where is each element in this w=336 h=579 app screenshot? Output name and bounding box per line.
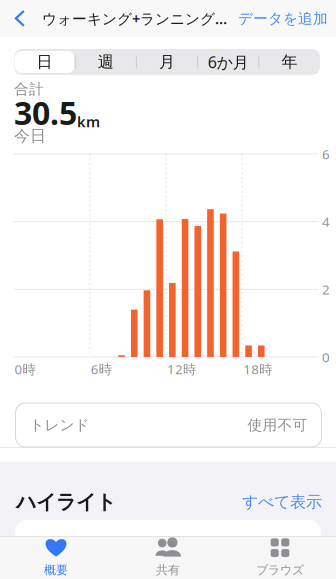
staticText: 2 — [322, 280, 330, 298]
staticText: 0時 — [15, 360, 36, 378]
button[interactable]: 年 — [259, 51, 319, 73]
staticText: データを追加 — [238, 9, 328, 27]
staticText: km — [77, 112, 100, 131]
staticText: 年 — [281, 52, 297, 72]
button[interactable]: 日 — [14, 51, 75, 73]
staticText: ハイライト — [16, 490, 116, 514]
button[interactable]: Back — [4, 0, 36, 37]
staticText: 月 — [159, 52, 175, 72]
button[interactable]: ブラウズ — [224, 536, 336, 579]
staticText: 共有 — [156, 563, 180, 577]
button[interactable]: 共有 — [112, 536, 224, 579]
staticText: 12時 — [167, 360, 196, 378]
staticText: 30.5 — [14, 91, 77, 134]
button[interactable]: トレンド — [15, 403, 321, 447]
button[interactable]: すべて表示 — [242, 492, 322, 512]
staticText: すべて表示 — [242, 492, 322, 512]
button[interactable]: データを追加 — [238, 0, 333, 37]
staticText: 概要 — [44, 563, 68, 577]
staticText: トレンド — [29, 416, 89, 434]
staticText: 4 — [322, 213, 330, 230]
staticText: 合計 — [14, 80, 44, 98]
staticText: 今日 — [14, 126, 46, 146]
staticText: 6時 — [91, 360, 112, 378]
button[interactable]: 概要 — [0, 536, 112, 579]
button[interactable]: 6か月 — [198, 51, 258, 73]
staticText: 0 — [322, 348, 330, 366]
staticText: 日 — [37, 52, 53, 72]
staticText: ウォーキング+ランニング… — [42, 9, 227, 28]
staticText: 6 — [322, 145, 330, 163]
staticText: 6か月 — [208, 51, 249, 73]
staticText: 18時 — [243, 360, 272, 378]
button[interactable]: 週 — [76, 51, 136, 73]
staticText: 週 — [98, 52, 114, 72]
button[interactable]: 月 — [137, 51, 197, 73]
staticText: 使用不可 — [247, 416, 307, 434]
staticText: ブラウズ — [256, 563, 304, 577]
